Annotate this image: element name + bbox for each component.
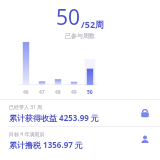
staticText: 目标 4 年满期后 [9, 131, 45, 138]
button[interactable]: Tax detail [138, 133, 152, 147]
staticText: 50 [56, 3, 81, 32]
button[interactable]: Earnings detail [138, 106, 152, 120]
staticText: /52周 [81, 18, 105, 30]
staticText: 49 [71, 89, 77, 96]
staticText: 已参与周数 [65, 32, 95, 40]
staticText: 已经带人 31 周 [9, 104, 43, 111]
staticText: 47 [39, 89, 45, 96]
staticText: 累计获得收益 4253.99 元 [9, 112, 99, 123]
staticText: 50 [87, 89, 93, 96]
button[interactable]: 已经带人 31 周 [0, 100, 160, 126]
staticText: 累计撸税 1356.97 元 [9, 139, 83, 150]
staticText: 46 [23, 89, 29, 96]
staticText: 48 [55, 89, 61, 96]
button[interactable]: 目标 4 年满期后 [0, 127, 160, 153]
